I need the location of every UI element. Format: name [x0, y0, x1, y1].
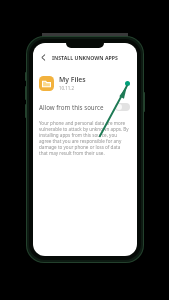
staticText: Your phone and personal data are more vu… [39, 120, 129, 156]
button[interactable]: My Files [33, 72, 137, 94]
staticText: INSTALL UNKNOWN APPS [52, 54, 118, 61]
button[interactable]: Allow from this source [33, 99, 137, 115]
button[interactable]: Allow from this source toggle [115, 103, 130, 111]
staticText: 10.11.2 [59, 85, 74, 91]
button[interactable]: Back [37, 51, 49, 63]
staticText: Allow from this source [39, 103, 115, 111]
staticText: My Files [59, 75, 86, 84]
